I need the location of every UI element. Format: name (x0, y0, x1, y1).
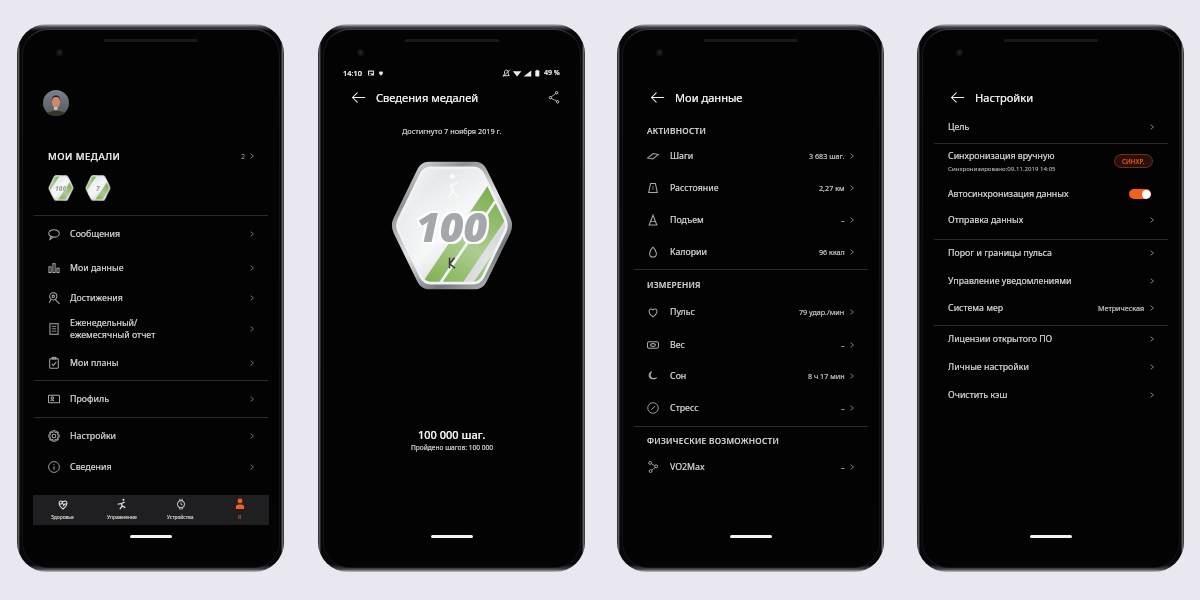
button[interactable]: Автосинхронизация данных (923, 180, 1179, 207)
staticText: Отправка данных (948, 214, 1024, 226)
staticText: Сон (670, 370, 687, 382)
staticText: 49 % (544, 68, 560, 78)
staticText: Сведения медалей (376, 90, 479, 105)
staticText: 100 (55, 184, 67, 193)
button[interactable]: Цель (923, 113, 1179, 141)
button[interactable]: Profile avatar (43, 90, 69, 116)
staticText: 100 (418, 196, 490, 252)
staticText: 79 удар./мин (799, 307, 845, 317)
staticText: 2,27 км (819, 183, 845, 193)
staticText: Устройства (167, 514, 194, 521)
staticText: Синхронизировано:09.11.2019 14:05 (948, 164, 1056, 172)
staticText: 96 ккал (819, 247, 845, 257)
staticText: МОИ МЕДАЛИ (48, 150, 121, 163)
staticText: 2 (241, 151, 246, 161)
button[interactable]: Управление уведомлениями (923, 267, 1179, 295)
staticText: 100 (55, 184, 67, 193)
button[interactable]: Устройства (151, 495, 210, 525)
staticText: Упражнение (107, 514, 137, 521)
button[interactable]: Мои данные (23, 253, 279, 283)
button[interactable]: Система мер (923, 294, 1179, 322)
button[interactable]: 7 (85, 173, 111, 203)
button[interactable]: Калории (623, 237, 879, 267)
staticText: Здоровье (51, 514, 74, 521)
staticText: Очистить кэш (948, 389, 1008, 401)
button[interactable]: Подъем (623, 205, 879, 235)
staticText: Я (238, 514, 242, 521)
staticText: VO2Max (670, 461, 705, 473)
staticText: Личные настройки (948, 361, 1029, 373)
button[interactable]: 100 (48, 173, 74, 203)
staticText: 7 (96, 184, 100, 193)
button[interactable]: Сон (623, 361, 879, 391)
staticText: 100 (418, 200, 490, 256)
staticText: 14:10 (343, 68, 362, 78)
button[interactable]: Расстояние (623, 173, 879, 203)
staticText: 100 (55, 184, 67, 193)
button[interactable]: Здоровье (33, 495, 92, 525)
button[interactable]: VO2Max (623, 452, 879, 482)
staticText: 7 (96, 184, 100, 193)
staticText: Еженедельный/ ежемесячный отчет (70, 317, 156, 341)
staticText: Автосинхронизация данных (948, 188, 1069, 200)
button[interactable]: Личные настройки (923, 353, 1179, 381)
staticText: Мои планы (70, 357, 119, 369)
button[interactable]: Share (542, 85, 566, 109)
button[interactable]: Back (945, 85, 969, 109)
staticText: 3 683 шаг. (809, 151, 845, 161)
staticText: Достижения (70, 292, 123, 304)
button[interactable]: МОИ МЕДАЛИ (23, 148, 279, 164)
staticText: Порог и границы пульса (948, 247, 1052, 259)
staticText: Пульс (670, 306, 695, 318)
button[interactable]: Вес (623, 330, 879, 360)
button[interactable]: Сообщения (23, 219, 279, 249)
staticText: Мои данные (70, 262, 124, 274)
staticText: 100 (55, 184, 67, 193)
button[interactable]: Пульс (623, 297, 879, 327)
staticText: Сообщения (70, 228, 121, 240)
button[interactable]: Очистить кэш (923, 381, 1179, 409)
button[interactable]: Back (645, 85, 669, 109)
button[interactable]: Еженедельный/ ежемесячный отчет (23, 314, 279, 344)
button[interactable]: Достижения (23, 283, 279, 313)
staticText: Стресс (670, 402, 699, 414)
staticText: Синхронизация вручную (948, 150, 1055, 162)
button[interactable]: Я (210, 495, 269, 525)
staticText: 100 000 шаг. (418, 427, 486, 442)
button[interactable]: Back (346, 85, 370, 109)
staticText: Достигнуто 7 ноября 2019 г. (402, 126, 502, 136)
staticText: – (841, 340, 845, 350)
staticText: Цель (948, 121, 970, 133)
button[interactable]: Лицензии открытого ПО (923, 325, 1179, 353)
button[interactable]: Настройки (23, 421, 279, 451)
button[interactable]: Профиль (23, 384, 279, 414)
button[interactable]: Синхронизация вручную (923, 143, 1179, 179)
staticText: Подъем (670, 214, 704, 226)
staticText: Настройки (975, 90, 1034, 105)
staticText: Профиль (70, 393, 109, 405)
button[interactable]: Мои планы (23, 348, 279, 378)
staticText: 7 (96, 184, 100, 193)
staticText: Пройдено шагов: 100 000 (411, 443, 494, 452)
staticText: Вес (670, 339, 685, 351)
button[interactable]: Шаги (623, 141, 879, 171)
button[interactable]: Сведения (23, 452, 279, 482)
button[interactable]: Стресс (623, 393, 879, 423)
staticText: Калории (670, 246, 707, 258)
button[interactable]: Порог и границы пульса (923, 239, 1179, 267)
staticText: 100 (416, 198, 488, 254)
button[interactable]: Упражнение (92, 495, 151, 525)
staticText: Шаги (670, 150, 694, 162)
staticText: Управление уведомлениями (948, 275, 1072, 287)
staticText: ФИЗИЧЕСКИЕ ВОЗМОЖНОСТИ (647, 435, 780, 446)
staticText: Расстояние (670, 182, 719, 194)
staticText: 8 ч 17 мин (808, 371, 845, 381)
staticText: – (841, 403, 845, 413)
staticText: Сведения (70, 461, 112, 473)
staticText: 100 (414, 200, 486, 256)
staticText: Мои данные (675, 90, 743, 105)
staticText: Метрическая (1098, 303, 1145, 313)
staticText: 100 (55, 184, 67, 193)
button[interactable]: Отправка данных (923, 206, 1179, 234)
staticText: 100 (414, 196, 486, 252)
